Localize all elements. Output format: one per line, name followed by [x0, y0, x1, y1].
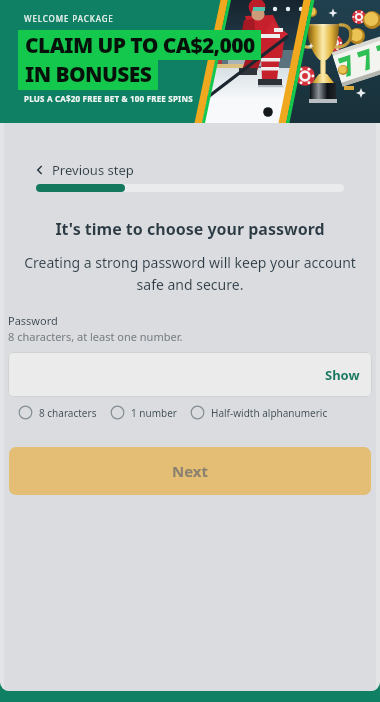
button[interactable]: Show — [313, 356, 372, 394]
staticText: Next — [172, 461, 209, 481]
button[interactable]: Show — [8, 352, 372, 397]
staticText: 8 characters — [39, 406, 97, 420]
staticText: 1 number — [131, 406, 177, 420]
button[interactable]: Welcome package promotion banner — [0, 0, 380, 123]
button[interactable]: Next — [9, 447, 371, 495]
button[interactable]: Previous step — [33, 161, 134, 179]
staticText: CLAIM UP TO CA$2,000 — [25, 31, 255, 60]
button[interactable]: 1 number — [110, 405, 177, 420]
staticText: Password — [8, 313, 58, 328]
staticText: IN BONUSES — [25, 60, 152, 89]
staticText: Show — [325, 366, 360, 384]
staticText: WELCOME PACKAGE — [24, 13, 114, 24]
button[interactable]: Half-width alphanumeric — [190, 405, 328, 420]
staticText: Previous step — [52, 161, 134, 179]
staticText: 8 characters, at least one number. — [8, 329, 183, 344]
staticText: It's time to choose your password — [18, 218, 362, 240]
staticText: Creating a strong password will keep you… — [18, 253, 362, 294]
button[interactable]: 8 characters — [18, 405, 97, 420]
staticText: Half-width alphanumeric — [211, 406, 328, 420]
staticText: PLUS A CA$20 FREE BET & 100 FREE SPINS — [24, 93, 193, 104]
